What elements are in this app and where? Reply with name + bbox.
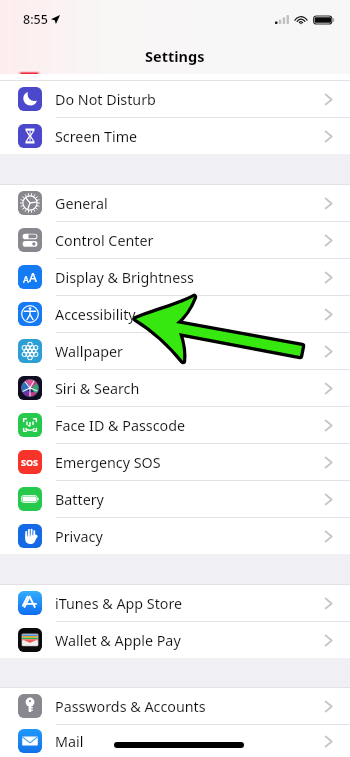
staticText: Control Center	[55, 231, 154, 250]
staticText: A	[29, 269, 37, 285]
staticText: Passwords & Accounts	[55, 697, 206, 716]
staticText: Settings	[145, 46, 205, 66]
staticText: Face ID & Passcode	[55, 416, 186, 435]
button[interactable]: Wallpaper	[0, 333, 350, 369]
staticText: Wallpaper	[55, 342, 123, 361]
staticText: Battery	[55, 490, 104, 509]
button[interactable]: Do Not Disturb	[0, 81, 350, 117]
button[interactable]: Face ID & Passcode	[0, 407, 350, 443]
button[interactable]: SOS	[0, 444, 350, 480]
button[interactable]: Battery	[0, 481, 350, 517]
button[interactable]: Mail	[0, 725, 350, 757]
button[interactable]: A	[0, 259, 350, 295]
staticText: iTunes & App Store	[55, 594, 183, 613]
staticText: SOS	[21, 456, 39, 468]
button[interactable]: Privacy	[0, 518, 350, 554]
button[interactable]: Passwords & Accounts	[0, 688, 350, 724]
staticText: Accessibility	[55, 305, 136, 324]
staticText: Mail	[55, 732, 84, 751]
button[interactable]: Siri & Search	[0, 370, 350, 406]
button[interactable]: General	[0, 185, 350, 221]
staticText: Screen Time	[55, 127, 138, 146]
button[interactable]: Control Center	[0, 222, 350, 258]
staticText: Privacy	[55, 527, 103, 546]
staticText: Siri & Search	[55, 379, 140, 398]
button[interactable]: Wallet & Apple Pay	[0, 622, 350, 658]
staticText: Wallet & Apple Pay	[55, 631, 181, 650]
staticText: General	[55, 194, 108, 213]
staticText: 8:55	[23, 11, 48, 28]
staticText: Emergency SOS	[55, 453, 161, 472]
staticText: A	[23, 273, 29, 285]
button[interactable]: Accessibility	[0, 296, 350, 332]
staticText: Display & Brightness	[55, 268, 194, 287]
button[interactable]: Screen Time	[0, 118, 350, 154]
staticText: Do Not Disturb	[55, 90, 156, 109]
button[interactable]: iTunes & App Store	[0, 585, 350, 621]
